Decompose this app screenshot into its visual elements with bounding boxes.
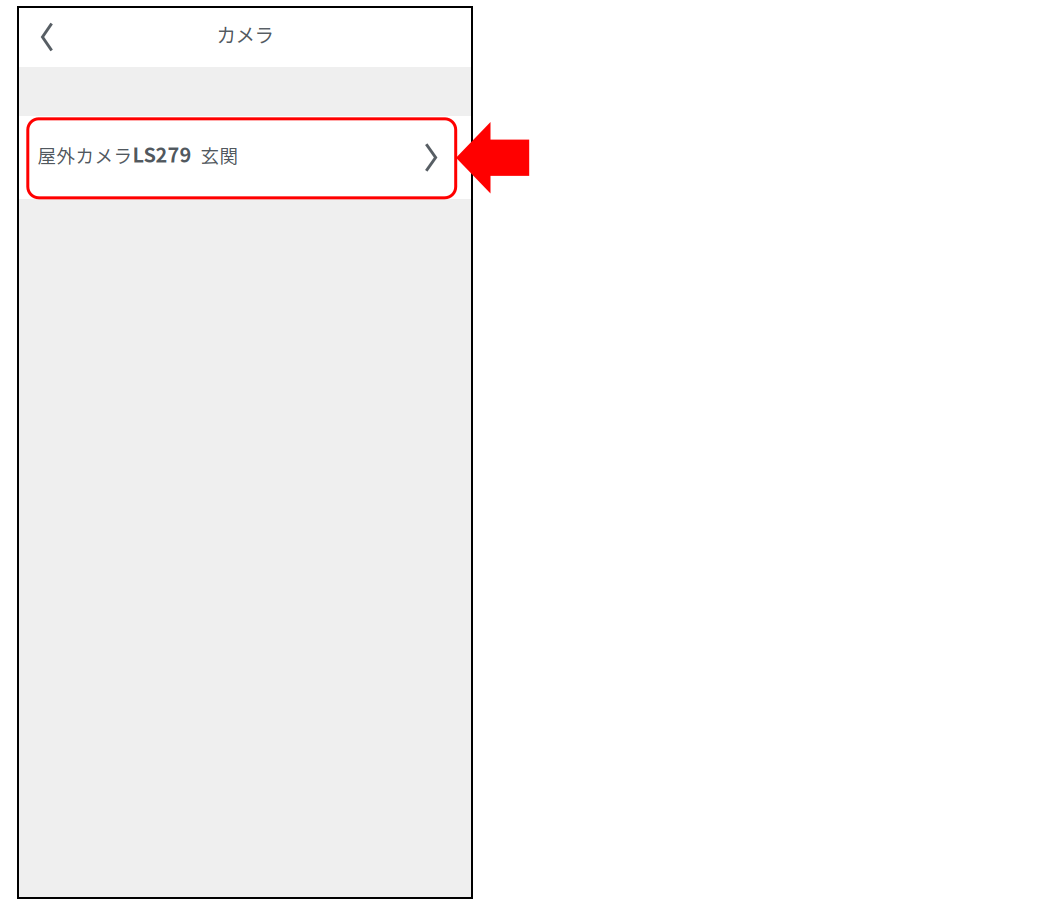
staticText: 屋外カメラLS279 玄関 [37,140,238,168]
button[interactable]: 屋外カメラLS279 玄関 [18,116,472,199]
staticText: カメラ [216,20,273,48]
button[interactable]: 戻る [18,7,53,67]
